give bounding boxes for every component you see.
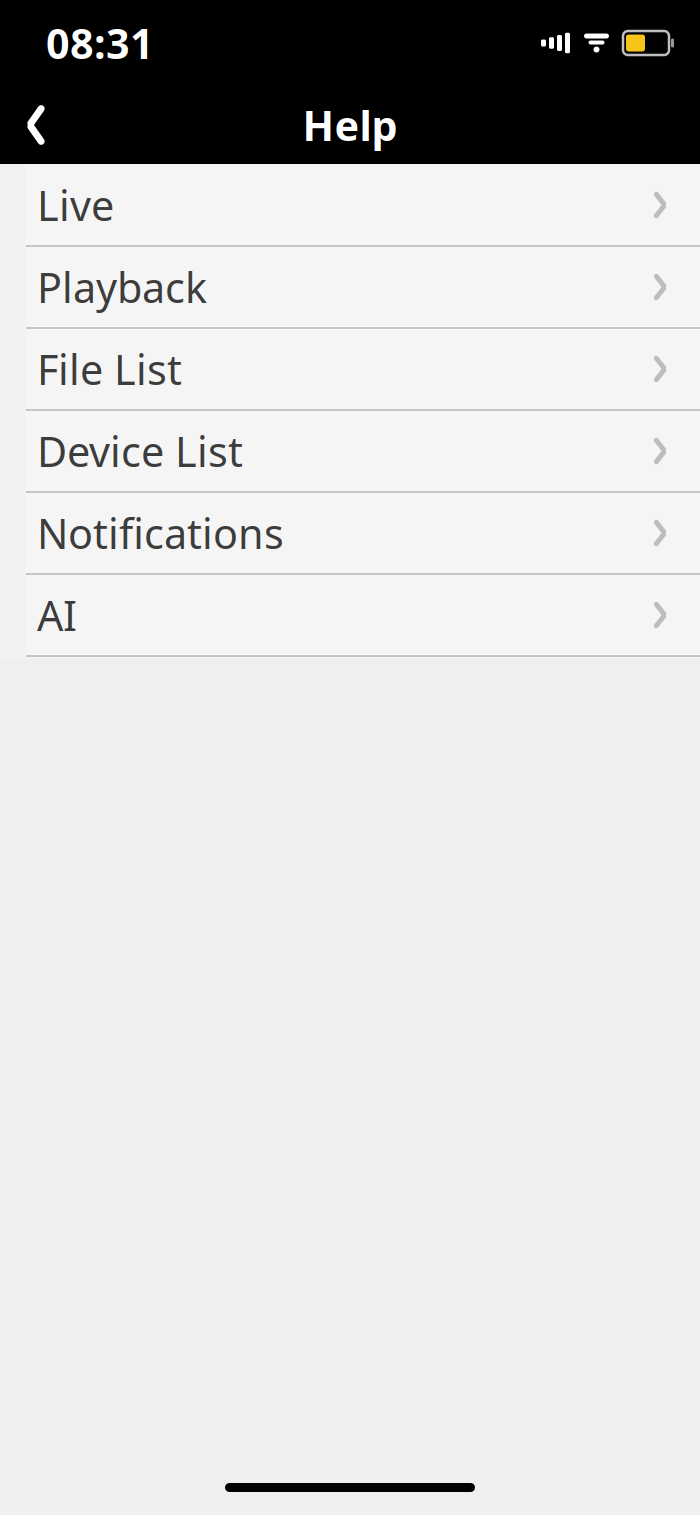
staticText: Live xyxy=(37,178,114,232)
button[interactable]: Device List xyxy=(26,411,700,491)
button[interactable]: Notifications xyxy=(26,493,700,573)
staticText: AI xyxy=(37,588,77,642)
staticText: Playback xyxy=(37,260,207,314)
button[interactable]: AI xyxy=(26,575,700,655)
staticText: Help xyxy=(302,98,397,152)
button[interactable]: File List xyxy=(26,329,700,409)
staticText: 08:31 xyxy=(46,16,154,70)
staticText: Device List xyxy=(37,424,243,478)
button[interactable]: Back xyxy=(0,86,72,164)
button[interactable]: Playback xyxy=(26,247,700,327)
staticText: File List xyxy=(37,342,182,396)
button[interactable]: Live xyxy=(26,165,700,245)
staticText: Notifications xyxy=(37,506,284,560)
